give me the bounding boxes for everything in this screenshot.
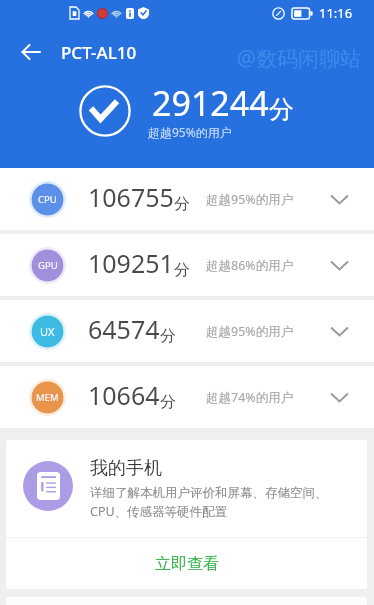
staticText: 291244: [152, 80, 269, 126]
staticText: 分: [174, 260, 190, 280]
staticText: GPU: [38, 259, 58, 272]
staticText: 106755: [88, 180, 174, 214]
button[interactable]: MEM: [0, 366, 374, 428]
button[interactable]: GPU: [0, 234, 374, 296]
staticText: 我的手机: [90, 457, 162, 480]
button[interactable]: CPU: [0, 168, 374, 230]
staticText: 分: [174, 194, 190, 214]
button[interactable]: Expand: [324, 184, 354, 214]
staticText: 超越95%的用户: [148, 124, 232, 140]
staticText: @数码闲聊站: [237, 44, 361, 73]
staticText: 分: [160, 392, 176, 412]
staticText: 超越95%的用户: [206, 323, 294, 340]
staticText: 立即查看: [155, 554, 219, 574]
staticText: CPU: [38, 193, 57, 206]
staticText: 详细了解本机用户评价和屏幕、存储空间、 CPU、传感器等硬件配置: [90, 485, 328, 520]
staticText: 超越74%的用户: [206, 389, 294, 406]
staticText: PCT-AL10: [61, 41, 137, 64]
staticText: UX: [40, 324, 55, 339]
staticText: 11:16: [319, 4, 353, 22]
staticText: 10664: [88, 378, 160, 412]
button[interactable]: Expand: [324, 316, 354, 346]
staticText: MEM: [36, 391, 59, 404]
button[interactable]: Expand: [324, 250, 354, 280]
staticText: 超越95%的用户: [206, 191, 294, 208]
staticText: 109251: [88, 246, 174, 280]
staticText: 分: [160, 326, 176, 346]
button[interactable]: Back: [8, 29, 54, 75]
button[interactable]: UX: [0, 300, 374, 362]
button[interactable]: Expand: [324, 382, 354, 412]
button[interactable]: 立即查看: [6, 538, 367, 589]
staticText: 超越86%的用户: [206, 257, 294, 274]
staticText: 64574: [88, 312, 160, 346]
staticText: 分: [269, 94, 294, 125]
